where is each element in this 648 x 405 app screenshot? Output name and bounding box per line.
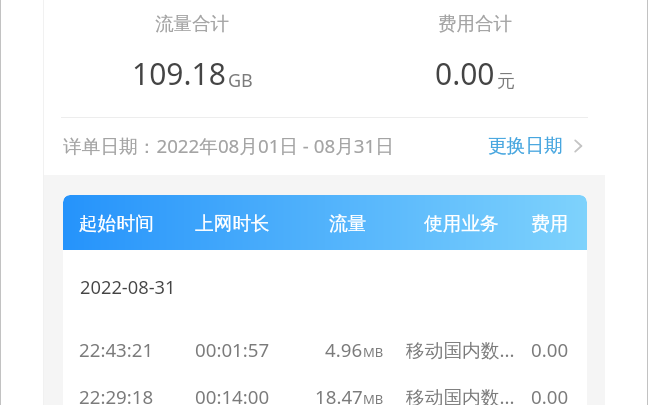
staticText: GB <box>228 68 253 93</box>
staticText: 00:01:57 <box>195 337 270 362</box>
staticText: 0.00 <box>435 53 495 94</box>
staticText: 流量 <box>329 212 367 236</box>
button[interactable]: 22:29:18 <box>63 373 587 405</box>
staticText: 使用业务 <box>424 212 499 236</box>
staticText: 0.00 <box>531 384 569 405</box>
staticText: 0.00 <box>531 337 569 362</box>
staticText: 4.96 <box>325 337 363 362</box>
staticText: 移动国内数... <box>406 337 515 363</box>
staticText: 2022-08-31 <box>80 274 176 299</box>
staticText: 元 <box>497 70 515 93</box>
staticText: 22:29:18 <box>79 384 154 405</box>
button[interactable]: 更换日期 <box>482 125 591 167</box>
staticText: 移动国内数... <box>406 384 515 405</box>
staticText: 详单日期：2022年08月01日 - 08月31日 <box>63 133 394 159</box>
staticText: 起始时间 <box>79 212 154 236</box>
staticText: 费用 <box>531 212 569 236</box>
staticText: MB <box>363 390 384 405</box>
other: Change date <box>571 139 585 153</box>
staticText: 流量合计 <box>155 12 229 35</box>
staticText: 更换日期 <box>488 134 563 158</box>
staticText: 上网时长 <box>195 212 270 236</box>
staticText: 费用合计 <box>438 12 512 35</box>
staticText: 22:43:21 <box>79 337 154 362</box>
button[interactable]: 22:43:21 <box>63 326 587 373</box>
staticText: 00:14:00 <box>195 384 270 405</box>
staticText: 109.18 <box>132 53 226 94</box>
staticText: MB <box>363 343 384 361</box>
staticText: 18.47 <box>315 384 363 405</box>
